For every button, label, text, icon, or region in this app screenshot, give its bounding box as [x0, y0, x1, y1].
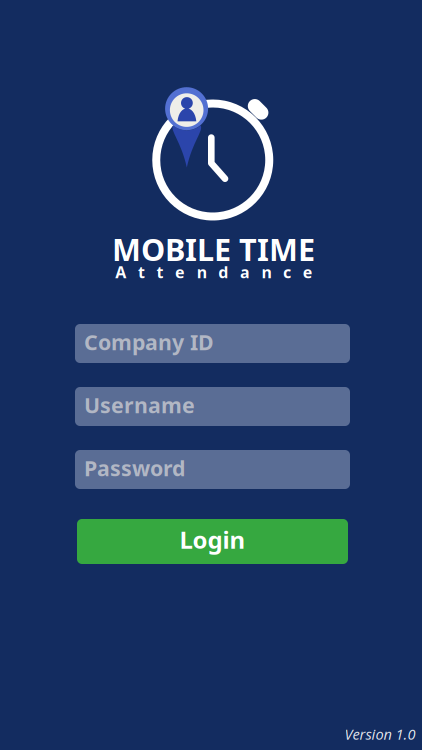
button[interactable]: Password — [75, 450, 350, 489]
button[interactable]: Company ID — [75, 324, 350, 363]
staticText: Version 1.0 — [344, 724, 415, 744]
staticText: Username — [84, 391, 195, 419]
staticText: Login — [179, 524, 245, 555]
staticText: Attendance — [115, 261, 313, 283]
staticText: MOBILE TIME — [112, 229, 315, 269]
staticText: Company ID — [84, 328, 214, 356]
staticText: Password — [84, 454, 185, 482]
button[interactable]: Login — [77, 519, 348, 564]
button[interactable]: Username — [75, 387, 350, 426]
